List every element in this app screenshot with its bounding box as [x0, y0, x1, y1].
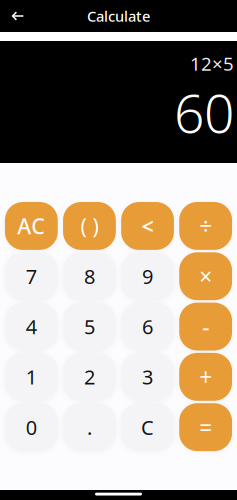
- staticText: 3: [142, 364, 153, 390]
- staticText: 2: [84, 364, 95, 390]
- staticText: +: [199, 362, 212, 392]
- staticText: <: [141, 212, 153, 240]
- staticText: AC: [17, 212, 45, 240]
- staticText: -: [202, 311, 209, 342]
- staticText: 6: [142, 313, 153, 340]
- staticText: =: [199, 412, 212, 442]
- button[interactable]: -: [179, 303, 232, 350]
- button[interactable]: +: [179, 353, 232, 401]
- staticText: ×: [199, 261, 212, 291]
- button[interactable]: 7: [5, 252, 58, 300]
- staticText: 12×5: [190, 51, 234, 76]
- staticText: 4: [26, 313, 37, 340]
- button[interactable]: 0: [5, 403, 58, 451]
- button[interactable]: 4: [5, 303, 58, 350]
- staticText: ÷: [199, 211, 212, 241]
- button[interactable]: 1: [5, 353, 58, 401]
- staticText: 1: [26, 364, 37, 390]
- button[interactable]: .: [63, 403, 116, 451]
- button[interactable]: 3: [121, 353, 174, 401]
- button[interactable]: Back: [0, 0, 36, 32]
- staticText: Calculate: [87, 6, 150, 26]
- button[interactable]: AC: [5, 202, 58, 250]
- button[interactable]: 9: [121, 252, 174, 300]
- staticText: ( ): [80, 212, 98, 240]
- staticText: 0: [26, 414, 37, 440]
- button[interactable]: <: [121, 202, 174, 250]
- button[interactable]: 2: [63, 353, 116, 401]
- button[interactable]: ÷: [179, 202, 232, 250]
- staticText: 5: [84, 313, 95, 340]
- button[interactable]: ( ): [63, 202, 116, 250]
- button[interactable]: 6: [121, 303, 174, 350]
- staticText: 7: [26, 263, 37, 290]
- button[interactable]: ×: [179, 252, 232, 300]
- staticText: 60: [174, 77, 234, 148]
- button[interactable]: =: [179, 403, 232, 451]
- button[interactable]: 8: [63, 252, 116, 300]
- button[interactable]: C: [121, 403, 174, 451]
- staticText: C: [141, 414, 154, 440]
- staticText: 9: [142, 263, 153, 290]
- staticText: .: [87, 414, 92, 440]
- staticText: 8: [84, 263, 95, 290]
- button[interactable]: 5: [63, 303, 116, 350]
